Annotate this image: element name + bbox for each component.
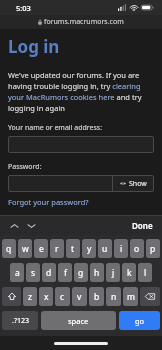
button[interactable]: e: [34, 239, 48, 258]
staticText: f: [64, 267, 67, 279]
staticText: c: [60, 291, 65, 303]
staticText: Log in: [8, 35, 60, 58]
staticText: g: [78, 267, 84, 279]
button[interactable]: g: [74, 263, 88, 282]
button[interactable]: z: [23, 287, 37, 306]
button[interactable]: Forgot your password?: [8, 197, 89, 207]
button[interactable]: [8, 136, 154, 153]
button[interactable]: Backspace: [140, 287, 160, 306]
button[interactable]: u: [98, 239, 112, 258]
button[interactable]: j: [106, 263, 120, 282]
staticText: space: [68, 316, 89, 326]
staticText: Forgot your password?: [8, 197, 89, 207]
staticText: Your name or email address:: [8, 123, 103, 133]
button[interactable]: b: [89, 287, 104, 306]
button[interactable]: r: [50, 239, 64, 258]
button[interactable]: y: [82, 239, 96, 258]
button[interactable]: .?123: [2, 311, 38, 330]
button[interactable]: h: [90, 263, 104, 282]
button[interactable]: space: [41, 311, 116, 330]
button[interactable]: [8, 175, 112, 192]
staticText: z: [28, 291, 32, 303]
button[interactable]: m: [123, 287, 138, 306]
staticText: Done: [132, 220, 153, 231]
staticText: d: [46, 267, 52, 279]
button[interactable]: a: [10, 263, 24, 282]
button[interactable]: p: [146, 239, 160, 258]
button[interactable]: o: [130, 239, 144, 258]
staticText: go: [135, 316, 145, 326]
staticText: u: [102, 243, 108, 255]
staticText: We've updated our forums. If you are hav…: [8, 70, 154, 113]
button[interactable]: Previous field: [9, 220, 20, 231]
staticText: e: [39, 243, 44, 255]
button[interactable]: x: [39, 287, 53, 306]
staticText: a: [15, 267, 20, 279]
button[interactable]: s: [26, 263, 40, 282]
staticText: l: [144, 267, 147, 279]
button[interactable]: forums.macrumors.com: [44, 17, 124, 27]
staticText: p: [150, 243, 156, 255]
staticText: q: [6, 243, 12, 255]
staticText: x: [44, 291, 49, 303]
button[interactable]: Next field: [26, 220, 37, 231]
button[interactable]: t: [66, 239, 80, 258]
button[interactable]: n: [106, 287, 121, 306]
staticText: Show: [129, 179, 147, 189]
staticText: 5:03: [16, 3, 31, 13]
staticText: k: [127, 267, 132, 279]
staticText: h: [94, 267, 100, 279]
button[interactable]: d: [42, 263, 56, 282]
staticText: .?123: [12, 316, 29, 326]
button[interactable]: l: [138, 263, 152, 282]
button[interactable]: k: [122, 263, 136, 282]
staticText: Password:: [8, 162, 42, 172]
button[interactable]: Show password: [113, 175, 154, 192]
staticText: t: [71, 243, 75, 255]
button[interactable]: go: [119, 311, 160, 330]
staticText: w: [22, 243, 29, 255]
button[interactable]: q: [2, 239, 16, 258]
button[interactable]: Done: [132, 220, 153, 231]
staticText: b: [94, 291, 100, 303]
staticText: r: [55, 243, 59, 255]
staticText: s: [31, 267, 36, 279]
staticText: forums.macrumors.com: [44, 17, 124, 27]
staticText: o: [134, 243, 140, 255]
button[interactable]: i: [114, 239, 128, 258]
staticText: m: [127, 291, 135, 303]
staticText: j: [112, 267, 115, 279]
other: Show password: [120, 181, 126, 186]
button[interactable]: Shift: [2, 287, 21, 306]
button[interactable]: f: [58, 263, 72, 282]
button[interactable]: w: [18, 239, 32, 258]
button[interactable]: v: [72, 287, 87, 306]
staticText: v: [77, 291, 82, 303]
staticText: n: [111, 291, 117, 303]
staticText: i: [120, 243, 123, 255]
staticText: y: [87, 243, 92, 255]
button[interactable]: c: [55, 287, 70, 306]
